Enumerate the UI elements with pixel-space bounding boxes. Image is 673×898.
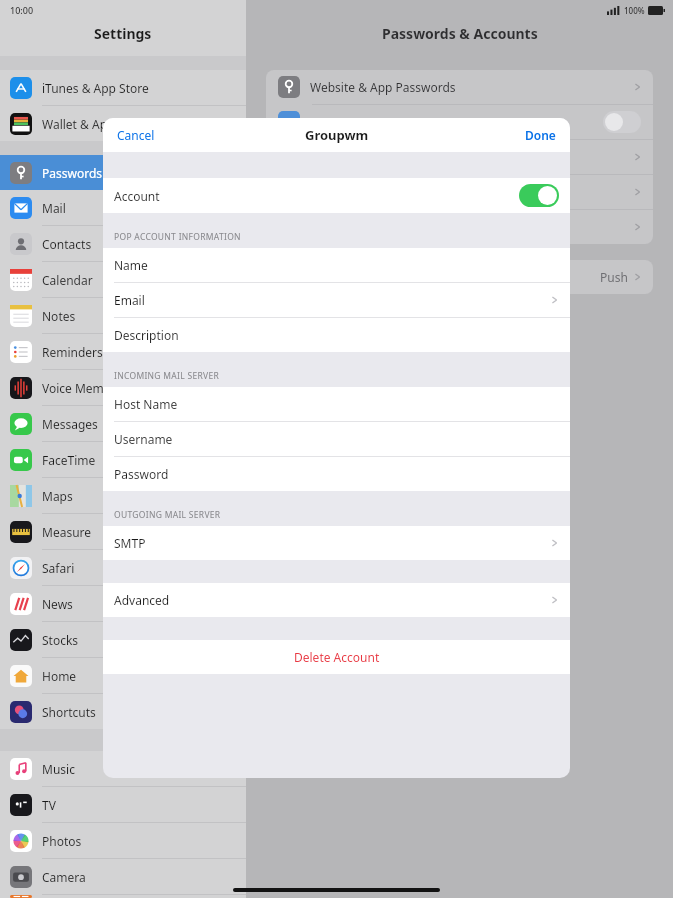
staticText: Contacts bbox=[42, 236, 92, 252]
button[interactable]: Name bbox=[103, 248, 570, 282]
staticText: Done bbox=[525, 127, 556, 143]
button[interactable]: News bbox=[0, 586, 246, 621]
button[interactable]: Reminders bbox=[0, 334, 246, 369]
button[interactable]: Account bbox=[103, 178, 570, 213]
staticText: Home bbox=[42, 668, 77, 684]
button[interactable]: Home bbox=[0, 658, 246, 693]
staticText: Delete Account bbox=[294, 649, 380, 665]
staticText: Website & App Passwords bbox=[310, 79, 456, 95]
staticText: Settings bbox=[94, 24, 152, 43]
button[interactable]: Contacts bbox=[0, 226, 246, 261]
button[interactable]: Safari bbox=[0, 550, 246, 585]
staticText: Push bbox=[600, 269, 628, 285]
staticText: TV bbox=[42, 797, 56, 813]
staticText: Passwords & Accounts bbox=[42, 165, 169, 181]
button[interactable]: Username bbox=[103, 422, 570, 456]
button[interactable]: Voice Memos bbox=[0, 370, 246, 405]
staticText: Notes bbox=[42, 308, 76, 324]
button[interactable]: Advanced bbox=[103, 583, 570, 617]
staticText: Messages bbox=[42, 416, 98, 432]
staticText: Advanced bbox=[114, 592, 170, 608]
button[interactable]: Stocks bbox=[0, 622, 246, 657]
staticText: Measure bbox=[42, 524, 92, 540]
other: Account enabled bbox=[519, 184, 559, 207]
button[interactable]: Camera bbox=[0, 859, 246, 894]
button[interactable]: Measure bbox=[0, 514, 246, 549]
staticText: Safari bbox=[42, 560, 75, 576]
button[interactable]: Wallet & Apple Pay bbox=[0, 106, 246, 141]
button[interactable]: Done bbox=[511, 121, 570, 149]
button[interactable]: Description bbox=[103, 318, 570, 352]
staticText: Wallet & Apple Pay bbox=[42, 116, 148, 132]
staticText: Photos bbox=[42, 833, 82, 849]
staticText: Camera bbox=[42, 869, 86, 885]
button[interactable]: Calendar bbox=[0, 262, 246, 297]
staticText: Groupwm bbox=[305, 126, 369, 144]
staticText: Account bbox=[114, 188, 160, 204]
button[interactable]: Host Name bbox=[103, 387, 570, 421]
button[interactable]: TV bbox=[0, 787, 246, 822]
staticText: Shortcuts bbox=[42, 704, 96, 720]
button[interactable]: Notes bbox=[0, 298, 246, 333]
staticText: Email bbox=[114, 292, 145, 308]
staticText: Calendar bbox=[42, 272, 93, 288]
staticText: Username bbox=[114, 431, 173, 447]
staticText: SMTP bbox=[114, 535, 146, 551]
staticText: News bbox=[42, 596, 73, 612]
staticText: Description bbox=[114, 327, 179, 343]
button[interactable]: Cancel bbox=[103, 121, 169, 149]
staticText: iTunes & App Store bbox=[42, 80, 149, 96]
staticText: Music bbox=[42, 761, 75, 777]
staticText: Password bbox=[114, 466, 169, 482]
button[interactable]: iTunes & App Store bbox=[0, 70, 246, 105]
staticText: FaceTime bbox=[42, 452, 96, 468]
staticText: INCOMING MAIL SERVER bbox=[114, 370, 220, 382]
staticText: Reminders bbox=[42, 344, 103, 360]
button[interactable]: Mail bbox=[0, 190, 246, 225]
staticText: Cancel bbox=[117, 127, 155, 143]
staticText: 100% bbox=[624, 5, 645, 16]
button[interactable]: Books bbox=[0, 895, 246, 898]
button[interactable]: FaceTime bbox=[0, 442, 246, 477]
staticText: Stocks bbox=[42, 632, 79, 648]
button[interactable]: Photos bbox=[0, 823, 246, 858]
staticText: and 2 more... bbox=[310, 150, 379, 165]
staticText: Host Name bbox=[114, 396, 178, 412]
staticText: Maps bbox=[42, 488, 73, 504]
staticText: Mail bbox=[42, 200, 66, 216]
button[interactable]: Passwords & Accounts bbox=[0, 155, 246, 190]
button[interactable]: Password bbox=[103, 457, 570, 491]
staticText: POP ACCOUNT INFORMATION bbox=[114, 231, 241, 243]
staticText: OUTGOING MAIL SERVER bbox=[114, 509, 221, 521]
button[interactable]: Music bbox=[0, 751, 246, 786]
staticText: Voice Memos bbox=[42, 380, 117, 396]
staticText: Passwords & Accounts bbox=[382, 24, 538, 43]
button[interactable]: Messages bbox=[0, 406, 246, 441]
button[interactable]: Email bbox=[103, 283, 570, 317]
button[interactable]: SMTP bbox=[103, 526, 570, 560]
button[interactable]: Delete Account bbox=[103, 640, 570, 674]
staticText: 10:00 bbox=[10, 4, 34, 16]
staticText: Name bbox=[114, 257, 148, 273]
button[interactable]: Maps bbox=[0, 478, 246, 513]
button[interactable]: Shortcuts bbox=[0, 694, 246, 729]
